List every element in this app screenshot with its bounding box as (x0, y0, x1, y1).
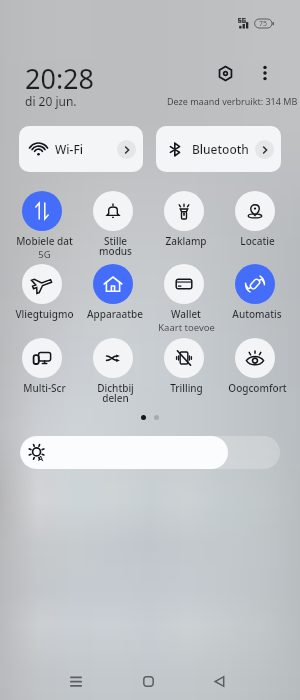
button[interactable]: Settings (212, 60, 238, 86)
staticText: 5G (38, 248, 51, 261)
button[interactable]: Locatie (219, 191, 290, 253)
staticText: Mobiele dat (16, 234, 73, 248)
staticText: Deze maand verbruikt: 314 MB (167, 95, 298, 107)
button[interactable]: Wi-Fi (19, 126, 143, 172)
button[interactable]: More options (252, 60, 278, 86)
button[interactable]: Zaklamp (148, 191, 219, 253)
button[interactable]: Apparaatbe (77, 264, 148, 326)
button[interactable]: Bluetooth (156, 126, 281, 172)
staticText: Kaart toevoe (158, 321, 215, 334)
staticText: Multi-Scr (23, 381, 66, 395)
staticText: A (38, 453, 44, 463)
staticText: Oogcomfort (228, 381, 287, 395)
button[interactable]: Trilling (148, 338, 219, 400)
staticText: Vliegtuigmo (15, 307, 74, 321)
button[interactable]: Back (206, 668, 232, 694)
button[interactable]: Oogcomfort (219, 338, 290, 400)
staticText: Automatis (232, 307, 282, 321)
button[interactable]: Automatis (219, 264, 290, 326)
staticText: Trilling (170, 381, 203, 395)
staticText: Zaklamp (165, 234, 207, 248)
staticText: Stille modus (99, 234, 132, 258)
button[interactable]: Mobiele dat (6, 191, 77, 253)
staticText: 75 (259, 19, 268, 29)
button[interactable]: Multi-Scr (6, 338, 77, 400)
staticText: Locatie (240, 234, 275, 248)
staticText: Wi-Fi (55, 141, 83, 157)
button[interactable]: Home (135, 668, 161, 694)
staticText: Wallet (171, 307, 201, 321)
staticText: Dichtbij delen (97, 381, 134, 405)
staticText: 20:28 (25, 60, 95, 97)
button[interactable]: Recent apps (63, 668, 89, 694)
button[interactable]: Vliegtuigmo (6, 264, 77, 326)
button[interactable]: Brightness (20, 436, 280, 469)
staticText: Apparaatbe (87, 307, 143, 321)
staticText: Bluetooth (192, 141, 249, 157)
button[interactable]: Dichtbij delen (77, 338, 148, 400)
button[interactable]: Wallet (148, 264, 219, 326)
staticText: di 20 jun. (25, 93, 77, 109)
button[interactable]: Stille modus (77, 191, 148, 253)
